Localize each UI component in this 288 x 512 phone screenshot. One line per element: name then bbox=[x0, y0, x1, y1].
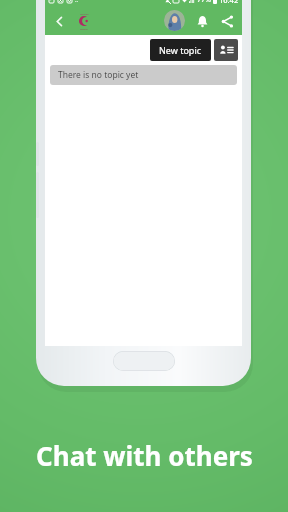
staticText: .. bbox=[75, 0, 79, 4]
staticText: Chat with others bbox=[36, 438, 253, 473]
staticText: 77% bbox=[197, 0, 211, 5]
button[interactable]: New topic bbox=[150, 39, 211, 61]
staticText: New topic bbox=[159, 44, 202, 56]
button[interactable]: Profile bbox=[164, 10, 185, 31]
staticText: dating bbox=[80, 27, 88, 30]
button[interactable]: Logo bbox=[71, 8, 97, 34]
button[interactable]: Share bbox=[217, 11, 237, 31]
staticText: There is no topic yet bbox=[58, 69, 139, 81]
button[interactable]: Notifications bbox=[192, 11, 212, 31]
staticText: muslim bbox=[80, 12, 89, 15]
button[interactable]: Contacts bbox=[214, 39, 238, 61]
button[interactable]: Back bbox=[50, 12, 68, 30]
button[interactable]: There is no topic yet bbox=[50, 65, 237, 85]
staticText: 16:42 bbox=[219, 0, 239, 5]
button[interactable]: Home bbox=[113, 351, 175, 371]
